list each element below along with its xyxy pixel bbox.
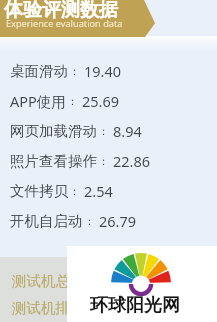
staticText: ： — [67, 94, 78, 108]
staticText: 文件拷贝 — [10, 182, 68, 200]
staticText: 环球阳光网 — [90, 294, 180, 317]
staticText: 体验评测数据 — [4, 0, 118, 22]
button[interactable]: 开机自启动 — [10, 206, 217, 236]
button[interactable]: APP使用 — [10, 86, 217, 116]
staticText: Experience evaluation data — [6, 17, 123, 30]
staticText: ： — [69, 184, 80, 198]
staticText: 网页加载滑动 — [10, 122, 97, 140]
staticText: APP使用 — [10, 91, 66, 111]
button[interactable]: 照片查看操作 — [10, 146, 217, 176]
staticText: ： — [84, 214, 95, 228]
staticText: 8.94 — [113, 121, 142, 141]
button[interactable]: 测试机排名 — [12, 294, 217, 321]
staticText: ： — [98, 154, 109, 168]
staticText: 22.86 — [113, 151, 151, 171]
staticText: 测试机总分 — [12, 272, 85, 290]
staticText: 25.69 — [82, 91, 120, 111]
staticText: ： — [86, 301, 97, 315]
staticText: 桌面滑动 — [10, 62, 68, 80]
staticText: 照片查看操作 — [10, 152, 97, 170]
staticText: 开机自启动 — [10, 212, 83, 230]
button[interactable]: 文件拷贝 — [10, 176, 217, 206]
staticText: 26.79 — [99, 211, 137, 231]
staticText: ： — [98, 124, 109, 138]
staticText: 测试机排名 — [12, 299, 85, 317]
staticText: ： — [69, 64, 80, 78]
button[interactable]: 测试机总分 — [12, 267, 217, 294]
staticText: 19.40 — [84, 61, 122, 81]
staticText: 2.54 — [84, 181, 113, 201]
button[interactable]: 网页加载滑动 — [10, 116, 217, 146]
button[interactable]: 桌面滑动 — [10, 56, 217, 86]
